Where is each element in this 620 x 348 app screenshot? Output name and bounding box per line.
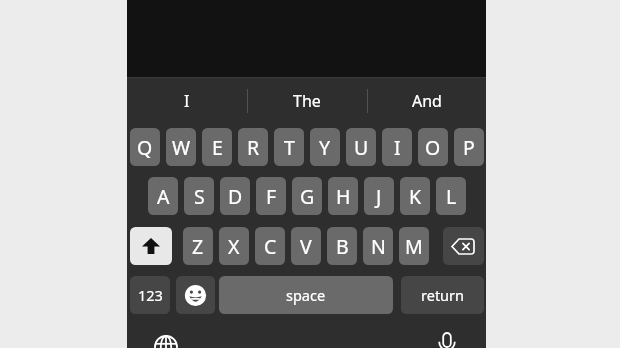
button[interactable]: S: [184, 177, 214, 215]
staticText: J: [376, 183, 382, 210]
button[interactable]: L: [436, 177, 466, 215]
button[interactable]: space: [219, 276, 393, 314]
staticText: E: [212, 134, 223, 161]
staticText: 123: [138, 285, 163, 305]
staticText: P: [463, 134, 475, 161]
staticText: K: [409, 183, 422, 210]
button[interactable]: R: [238, 128, 268, 166]
button[interactable]: [176, 276, 215, 314]
button[interactable]: E: [202, 128, 232, 166]
button[interactable]: G: [292, 177, 322, 215]
button[interactable]: X: [219, 227, 249, 265]
button[interactable]: Y: [310, 128, 340, 166]
button[interactable]: F: [256, 177, 286, 215]
button[interactable]: M: [399, 227, 429, 265]
staticText: O: [425, 134, 441, 161]
staticText: G: [300, 183, 315, 210]
button[interactable]: 123: [130, 276, 170, 314]
staticText: L: [446, 183, 457, 210]
staticText: C: [264, 233, 277, 260]
button[interactable]: [436, 331, 458, 348]
staticText: N: [371, 233, 386, 260]
staticText: M: [405, 233, 423, 260]
button[interactable]: H: [328, 177, 358, 215]
button[interactable]: And: [367, 82, 486, 120]
button[interactable]: T: [274, 128, 304, 166]
button[interactable]: V: [291, 227, 321, 265]
staticText: I: [394, 134, 401, 161]
button[interactable]: Z: [183, 227, 213, 265]
staticText: X: [228, 233, 240, 260]
button[interactable]: B: [327, 227, 357, 265]
button[interactable]: O: [418, 128, 448, 166]
staticText: W: [172, 134, 191, 161]
staticText: B: [336, 233, 349, 260]
staticText: A: [157, 183, 170, 210]
button[interactable]: D: [220, 177, 250, 215]
button[interactable]: K: [400, 177, 430, 215]
staticText: R: [247, 134, 260, 161]
button[interactable]: The: [247, 82, 366, 120]
button[interactable]: C: [255, 227, 285, 265]
button[interactable]: W: [166, 128, 196, 166]
button[interactable]: U: [346, 128, 376, 166]
staticText: Y: [319, 134, 331, 161]
staticText: Q: [137, 134, 153, 161]
button[interactable]: A: [148, 177, 178, 215]
button[interactable]: I: [382, 128, 412, 166]
button[interactable]: P: [454, 128, 484, 166]
button[interactable]: [130, 227, 172, 265]
button[interactable]: I: [127, 82, 246, 120]
staticText: H: [336, 183, 351, 210]
staticText: F: [266, 183, 277, 210]
button[interactable]: J: [364, 177, 394, 215]
staticText: Z: [192, 233, 204, 260]
staticText: return: [421, 285, 465, 305]
button[interactable]: [154, 335, 178, 348]
staticText: T: [284, 134, 295, 161]
button[interactable]: N: [363, 227, 393, 265]
staticText: S: [194, 183, 205, 210]
button[interactable]: return: [401, 276, 484, 314]
staticText: And: [412, 90, 442, 112]
button[interactable]: [443, 227, 484, 265]
staticText: I: [184, 90, 190, 112]
staticText: U: [354, 134, 369, 161]
button[interactable]: Q: [130, 128, 160, 166]
staticText: The: [293, 90, 321, 112]
staticText: D: [228, 183, 243, 210]
staticText: space: [286, 285, 326, 305]
staticText: V: [300, 233, 312, 260]
